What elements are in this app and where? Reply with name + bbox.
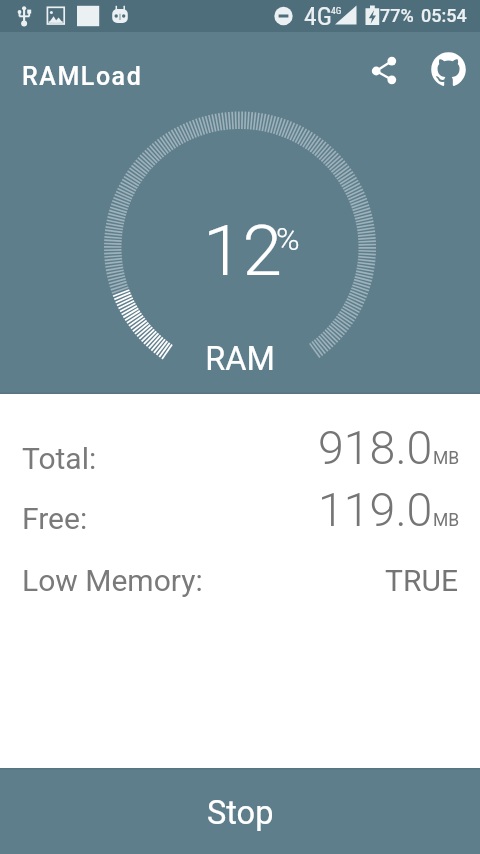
staticText: 05:54: [421, 5, 467, 26]
button[interactable]: Stop: [0, 768, 480, 854]
staticText: Free:: [22, 501, 88, 536]
staticText: 12: [203, 209, 283, 293]
staticText: RAM: [0, 340, 480, 378]
staticText: RAMLoad: [22, 62, 143, 91]
button[interactable]: GitHub: [424, 44, 472, 92]
staticText: Total:: [22, 441, 97, 476]
staticText: TRUE: [0, 563, 458, 598]
staticText: 4G: [304, 1, 332, 31]
staticText: MB: [433, 448, 460, 469]
button[interactable]: Share: [363, 47, 411, 95]
staticText: 119.0: [318, 483, 433, 537]
staticText: 918.0: [318, 421, 433, 475]
staticText: 4G: [331, 5, 342, 16]
staticText: Stop: [207, 794, 274, 832]
staticText: MB: [433, 510, 460, 531]
staticText: %: [276, 220, 300, 258]
staticText: Low Memory:: [22, 563, 203, 598]
staticText: 77%: [380, 5, 414, 26]
